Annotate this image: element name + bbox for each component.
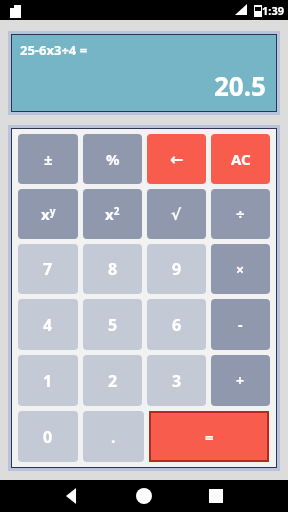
staticText: = [205, 427, 214, 447]
staticText: 5 [108, 314, 118, 336]
button[interactable]: 1 [18, 355, 78, 406]
button[interactable]: Recents [178, 480, 238, 512]
staticText: 1:39 [262, 3, 284, 18]
staticText: 25-6x3÷4 = [20, 41, 88, 59]
staticText: 1 [43, 370, 53, 392]
button[interactable]: Divide [211, 189, 270, 239]
button[interactable]: 7 [18, 244, 78, 294]
staticText: 20.5 [214, 68, 266, 103]
staticText: + [236, 371, 245, 390]
button[interactable]: 4 [18, 299, 78, 350]
button[interactable]: Back [50, 480, 110, 512]
button[interactable]: Home [114, 480, 174, 512]
staticText: 9 [172, 258, 182, 280]
button[interactable]: % [83, 134, 142, 184]
button[interactable]: x squared [83, 189, 142, 239]
staticText: ÷ [236, 204, 245, 224]
staticText: 8 [108, 258, 118, 280]
button[interactable]: Decimal point [83, 411, 144, 462]
staticText: xy [41, 204, 56, 224]
staticText: √ [171, 206, 182, 223]
button[interactable]: Equals [151, 413, 267, 460]
staticText: ± [44, 149, 53, 169]
staticText: 3 [172, 370, 182, 392]
button[interactable]: Plus minus [18, 134, 78, 184]
button[interactable]: 8 [83, 244, 142, 294]
button[interactable]: Backspace [147, 134, 206, 184]
button[interactable]: x to the power of y [18, 189, 78, 239]
staticText: ← [170, 150, 184, 169]
staticText: - [238, 315, 243, 334]
button[interactable]: 2 [83, 355, 142, 406]
staticText: x2 [105, 204, 120, 224]
button[interactable]: 5 [83, 299, 142, 350]
button[interactable]: Operator × [211, 244, 270, 294]
button[interactable]: 0 [18, 411, 78, 462]
staticText: AC [231, 149, 251, 169]
button[interactable]: Operator + [211, 355, 270, 406]
button[interactable]: 3 [147, 355, 206, 406]
staticText: % [106, 149, 120, 169]
button[interactable]: Square root [147, 189, 206, 239]
staticText: 7 [43, 258, 53, 280]
button[interactable]: 6 [147, 299, 206, 350]
button[interactable]: Operator - [211, 299, 270, 350]
staticText: 2 [108, 370, 118, 392]
staticText: 6 [172, 314, 182, 336]
staticText: 4 [43, 314, 53, 336]
staticText: 0 [43, 426, 53, 448]
button[interactable]: 9 [147, 244, 206, 294]
staticText: . [111, 426, 116, 448]
staticText: × [236, 260, 245, 279]
button[interactable]: AC [211, 134, 270, 184]
